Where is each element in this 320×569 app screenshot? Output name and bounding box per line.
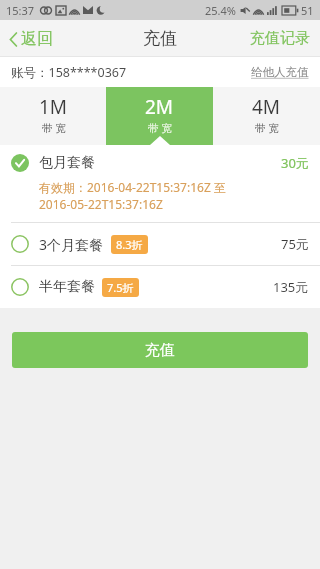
- button[interactable]: 给他人充值: [251, 65, 309, 79]
- button[interactable]: 充值记录: [240, 23, 320, 54]
- staticText: 半年套餐: [39, 278, 95, 296]
- staticText: 8.3折: [116, 237, 143, 252]
- staticText: 账号：158****0367: [11, 64, 127, 81]
- staticText: 给他人充值: [251, 65, 309, 79]
- button[interactable]: 2M: [106, 87, 213, 145]
- staticText: 75元: [281, 235, 309, 253]
- button[interactable]: 3个月套餐: [0, 223, 320, 265]
- button[interactable]: 半年套餐: [0, 266, 320, 308]
- staticText: 充值记录: [250, 29, 310, 48]
- staticText: 2M: [145, 94, 174, 120]
- button[interactable]: 包月套餐: [0, 145, 320, 222]
- staticText: 带 宽: [42, 121, 66, 135]
- staticText: 充值: [145, 341, 175, 360]
- staticText: 包月套餐: [39, 154, 95, 172]
- staticText: 25.4%: [205, 3, 236, 18]
- staticText: 4M: [252, 94, 281, 120]
- staticText: 返回: [21, 29, 53, 49]
- button[interactable]: 充值: [12, 332, 308, 368]
- button[interactable]: 返回: [0, 23, 63, 55]
- staticText: 15:37: [6, 3, 35, 18]
- button[interactable]: 1M: [0, 87, 106, 145]
- staticText: 30元: [281, 154, 309, 172]
- staticText: 51: [301, 3, 314, 18]
- button[interactable]: 4M: [213, 87, 320, 145]
- staticText: 充值: [143, 28, 177, 49]
- staticText: 1M: [39, 94, 68, 120]
- staticText: 有效期：2016-04-22T15:37:16Z 至 2016-05-22T15…: [39, 179, 299, 213]
- staticText: 带 宽: [255, 121, 279, 135]
- staticText: 带 宽: [148, 121, 172, 135]
- staticText: 3个月套餐: [39, 235, 104, 254]
- staticText: 7.5折: [107, 280, 134, 295]
- staticText: 135元: [273, 278, 309, 296]
